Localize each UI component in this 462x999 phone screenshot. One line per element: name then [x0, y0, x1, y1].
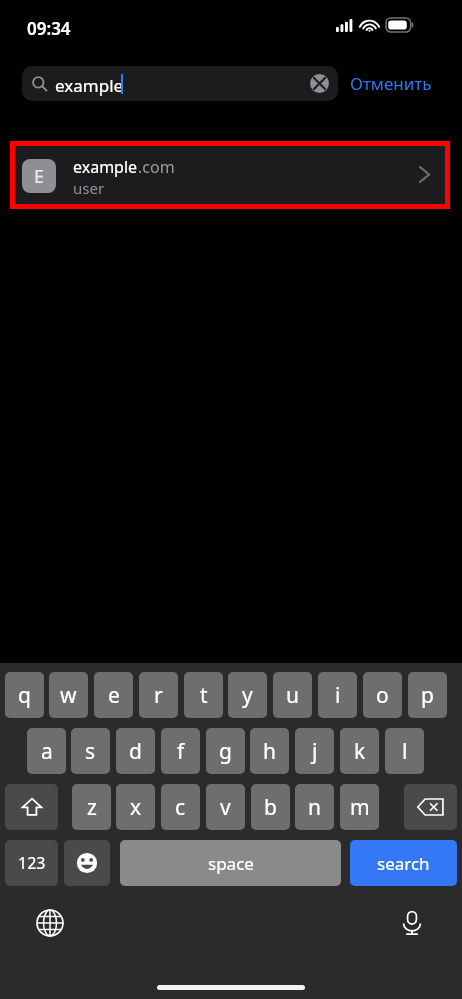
staticText: 123 — [18, 852, 46, 874]
button[interactable]: q — [5, 672, 44, 718]
staticText: l — [402, 737, 408, 766]
button[interactable]: search — [350, 840, 457, 886]
staticText: space — [208, 852, 254, 875]
button[interactable]: Clear text — [310, 74, 329, 93]
staticText: o — [376, 681, 389, 710]
staticText: user — [73, 178, 105, 198]
button[interactable]: b — [251, 784, 290, 830]
button[interactable]: Backspace — [404, 784, 457, 830]
button[interactable]: Emoji — [64, 840, 110, 886]
button[interactable]: space — [120, 840, 341, 886]
button[interactable]: c — [161, 784, 200, 830]
button[interactable]: a — [27, 728, 66, 774]
button[interactable]: d — [116, 728, 155, 774]
button[interactable]: f — [161, 728, 200, 774]
button[interactable]: n — [295, 784, 334, 830]
staticText: c — [175, 793, 186, 822]
staticText: q — [18, 681, 31, 710]
button[interactable]: 123 — [5, 840, 58, 886]
staticText: d — [129, 737, 142, 766]
button[interactable]: y — [228, 672, 267, 718]
staticText: m — [350, 793, 370, 822]
button[interactable]: example — [22, 66, 338, 101]
button[interactable]: r — [139, 672, 178, 718]
button[interactable]: Отменить — [350, 66, 450, 101]
staticText: i — [335, 681, 341, 710]
staticText: 09:34 — [27, 17, 71, 40]
staticText: s — [85, 737, 96, 766]
button[interactable]: Shift — [5, 784, 58, 830]
staticText: .com — [138, 156, 175, 178]
button[interactable]: Change keyboard language — [30, 903, 70, 943]
staticText: f — [177, 737, 185, 766]
staticText: g — [219, 737, 232, 766]
staticText: example — [55, 74, 124, 97]
staticText: e — [108, 681, 120, 710]
button[interactable]: s — [71, 728, 110, 774]
button[interactable]: g — [206, 728, 245, 774]
staticText: n — [308, 793, 321, 822]
staticText: example — [73, 156, 138, 178]
staticText: x — [130, 793, 142, 822]
staticText: t — [200, 681, 208, 710]
button[interactable]: m — [340, 784, 379, 830]
button[interactable]: l — [385, 728, 424, 774]
button[interactable]: v — [206, 784, 245, 830]
staticText: r — [154, 681, 163, 710]
button[interactable]: h — [250, 728, 289, 774]
staticText: Отменить — [350, 72, 432, 95]
button[interactable]: o — [363, 672, 402, 718]
staticText: h — [263, 737, 276, 766]
staticText: p — [421, 681, 434, 710]
staticText: j — [312, 737, 318, 766]
button[interactable]: x — [116, 784, 155, 830]
staticText: E — [34, 164, 45, 189]
button[interactable]: j — [295, 728, 334, 774]
staticText: search — [377, 852, 430, 875]
button[interactable]: p — [408, 672, 447, 718]
staticText: v — [220, 793, 231, 822]
button[interactable]: t — [184, 672, 223, 718]
staticText: y — [242, 681, 253, 710]
staticText: b — [264, 793, 277, 822]
staticText: w — [60, 681, 77, 710]
button[interactable]: e — [94, 672, 133, 718]
button[interactable]: E — [15, 146, 445, 204]
staticText: k — [354, 737, 366, 766]
button[interactable]: i — [318, 672, 357, 718]
button[interactable]: z — [72, 784, 111, 830]
button[interactable]: Dictation — [392, 903, 432, 943]
button[interactable]: w — [49, 672, 88, 718]
button[interactable]: k — [340, 728, 379, 774]
button[interactable]: u — [273, 672, 312, 718]
staticText: z — [87, 793, 97, 822]
staticText: a — [41, 737, 53, 766]
staticText: u — [286, 681, 299, 710]
